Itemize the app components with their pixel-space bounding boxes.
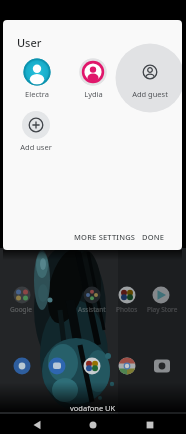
staticText: Play Store xyxy=(147,305,178,314)
button[interactable]: Lydia xyxy=(62,55,124,105)
staticText: User xyxy=(17,35,42,50)
staticText: Assistant xyxy=(78,305,106,314)
staticText: Google xyxy=(10,305,32,314)
staticText: Electra xyxy=(25,89,49,99)
staticText: Photos xyxy=(116,305,138,314)
staticText: Add user xyxy=(20,142,52,152)
staticText: Lydia xyxy=(84,89,103,99)
button[interactable]: DONE xyxy=(140,228,166,246)
button[interactable]: Add user xyxy=(5,108,67,158)
staticText: vodafone UK xyxy=(70,403,116,413)
button[interactable]: MORE SETTINGS xyxy=(74,228,136,246)
button[interactable]: Add guest xyxy=(119,55,181,105)
staticText: Add guest xyxy=(132,89,168,99)
staticText: MORE SETTINGS xyxy=(74,232,136,242)
staticText: DONE xyxy=(142,232,165,242)
button[interactable]: Electra xyxy=(6,55,68,105)
